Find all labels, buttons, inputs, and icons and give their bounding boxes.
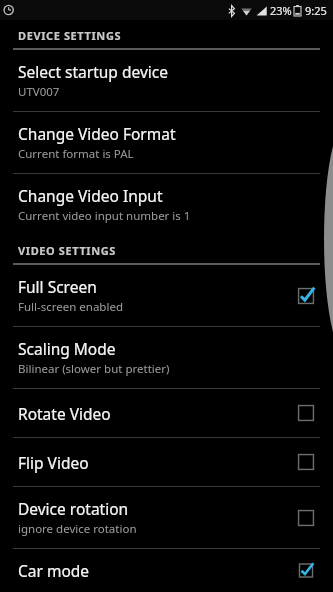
staticText: Current format is PAL	[18, 146, 134, 162]
staticText: UTV007	[18, 84, 60, 100]
staticText: Bilinear (slower but prettier)	[18, 361, 170, 377]
staticText: Car mode	[18, 560, 90, 581]
staticText: Current video input number is 1	[18, 208, 191, 224]
staticText: Change Video Format	[18, 123, 176, 144]
button[interactable]: Scaling Mode	[0, 327, 333, 388]
staticText: Device rotation	[18, 498, 129, 519]
staticText: Flip Video	[18, 452, 89, 473]
button[interactable]: Car mode	[0, 549, 333, 592]
button[interactable]: Flip Video	[293, 449, 319, 475]
button[interactable]: Change Video Format	[0, 112, 333, 173]
button[interactable]: Full Screen	[0, 265, 333, 326]
button[interactable]: Select startup device	[0, 50, 333, 111]
button[interactable]: Rotate Video	[293, 400, 319, 426]
staticText: Rotate Video	[18, 403, 111, 424]
button[interactable]: Rotate Video	[0, 389, 333, 437]
button[interactable]: Flip Video	[0, 438, 333, 486]
button[interactable]: Change Video Input	[0, 174, 333, 235]
staticText: ignore device rotation	[18, 521, 137, 537]
staticText: DEVICE SETTINGS	[18, 28, 122, 43]
staticText: 9:25	[305, 3, 327, 18]
button[interactable]: Device rotation	[293, 505, 319, 531]
staticText: VIDEO SETTINGS	[18, 243, 116, 258]
staticText: Change Video Input	[18, 185, 163, 206]
button[interactable]: Car mode	[293, 560, 319, 581]
button[interactable]: Device rotation	[0, 487, 333, 548]
staticText: Scaling Mode	[18, 338, 116, 359]
staticText: Select startup device	[18, 61, 168, 82]
staticText: 23%	[270, 3, 292, 18]
staticText: Full Screen	[18, 276, 97, 297]
button[interactable]: Full Screen	[293, 283, 319, 309]
staticText: Full-screen enabled	[18, 299, 123, 315]
